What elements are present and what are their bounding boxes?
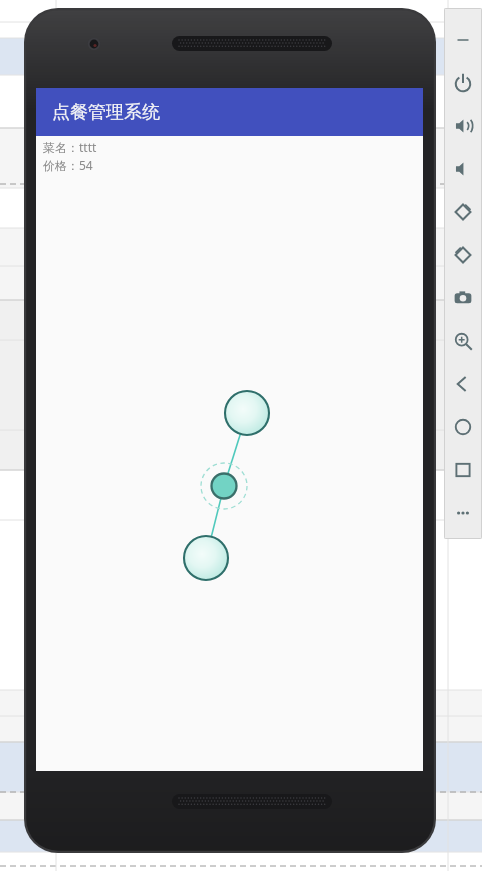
button[interactable]: More [445,491,481,534]
button[interactable]: Power [445,61,481,104]
button[interactable]: Zoom [445,319,481,362]
button[interactable]: Volume up [445,104,481,147]
button[interactable]: Rotate right [445,233,481,276]
button[interactable]: Overview [445,448,481,491]
staticText: 价格：54 [43,157,93,173]
button[interactable]: Volume down [445,147,481,190]
button[interactable]: Screenshot [445,276,481,319]
button[interactable]: Rotate left [445,190,481,233]
other: Node graph [36,173,423,771]
button[interactable]: Home [445,405,481,448]
staticText: 菜名：tttt [43,139,97,155]
staticText: 点餐管理系统 [52,101,160,124]
button[interactable]: Back [445,362,481,405]
button[interactable]: Minimize [445,18,481,61]
button[interactable]: 点餐管理系统 [36,88,423,136]
